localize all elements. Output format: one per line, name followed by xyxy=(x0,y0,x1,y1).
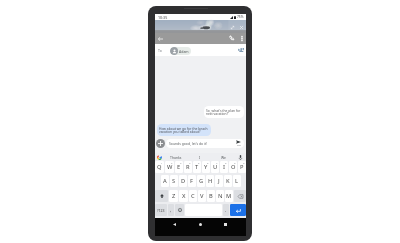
staticText: To xyxy=(158,48,162,53)
staticText: 7 xyxy=(216,161,218,164)
button[interactable]: How about we go for the beach vacation y… xyxy=(157,124,211,136)
button[interactable]: U xyxy=(211,161,219,173)
button[interactable]: P xyxy=(238,161,246,173)
staticText: L xyxy=(235,177,239,185)
button[interactable]: E xyxy=(175,161,183,173)
staticText: U xyxy=(213,163,218,171)
staticText: How about we go for the beach vacation y… xyxy=(159,126,209,134)
staticText: H xyxy=(208,177,213,185)
staticText: D xyxy=(181,177,186,185)
button[interactable]: Y xyxy=(202,161,210,173)
button[interactable]: Call xyxy=(227,34,236,43)
button[interactable]: N xyxy=(216,190,224,202)
staticText: Thanks xyxy=(170,155,182,160)
button[interactable]: F xyxy=(188,175,196,187)
button[interactable]: Sounds good, let's do it! xyxy=(166,139,244,148)
button[interactable]: Voice input xyxy=(237,154,244,160)
staticText: , xyxy=(170,207,172,213)
button[interactable]: L xyxy=(233,175,241,187)
button[interactable]: ?123 xyxy=(155,204,167,216)
button[interactable]: . xyxy=(223,204,229,216)
staticText: 3 xyxy=(180,161,182,164)
button[interactable]: Emoji xyxy=(175,204,184,216)
button[interactable]: H xyxy=(206,175,214,187)
button[interactable]: Q xyxy=(155,161,164,173)
button[interactable]: , xyxy=(168,204,174,216)
button[interactable]: A xyxy=(161,175,169,187)
button[interactable]: O xyxy=(229,161,237,173)
button[interactable]: We xyxy=(215,153,232,161)
staticText: O xyxy=(231,163,236,171)
button[interactable]: K xyxy=(224,175,232,187)
staticText: B xyxy=(209,192,213,200)
staticText: V xyxy=(200,192,204,200)
button[interactable]: Back xyxy=(169,219,179,229)
staticText: X xyxy=(182,192,186,200)
staticText: F xyxy=(190,177,194,185)
staticText: W xyxy=(167,163,173,171)
staticText: 75% xyxy=(237,15,244,19)
staticText: T xyxy=(195,163,199,171)
staticText: Sounds good, let's do it! xyxy=(169,141,208,146)
staticText: P xyxy=(240,163,244,171)
button[interactable]: Expand xyxy=(228,23,237,32)
button[interactable]: Add from contacts xyxy=(234,45,247,54)
staticText: ?123 xyxy=(157,208,165,213)
staticText: K xyxy=(226,177,230,185)
staticText: SMS xyxy=(237,144,241,147)
button[interactable]: Recents xyxy=(220,219,230,229)
button[interactable]: D xyxy=(179,175,187,187)
staticText: 5 xyxy=(198,161,200,164)
button[interactable]: Thanks xyxy=(165,153,186,161)
staticText: R xyxy=(186,163,190,171)
button[interactable]: G xyxy=(197,175,205,187)
staticText: G xyxy=(199,177,204,185)
staticText: N xyxy=(218,192,223,200)
button[interactable]: W xyxy=(165,161,174,173)
staticText: We xyxy=(221,155,226,160)
button[interactable]: Z xyxy=(169,190,178,202)
staticText: . xyxy=(225,207,227,213)
staticText: C xyxy=(191,192,195,200)
button[interactable]: Google search xyxy=(157,155,162,160)
button[interactable]: I xyxy=(193,153,207,161)
button[interactable]: I xyxy=(220,161,228,173)
staticText: S xyxy=(172,177,176,185)
staticText: Adam xyxy=(179,49,189,54)
staticText: 1 xyxy=(161,161,163,164)
button[interactable]: C xyxy=(189,190,197,202)
staticText: 10:35 xyxy=(158,15,168,20)
button[interactable]: Close xyxy=(237,23,246,32)
button[interactable]: T xyxy=(193,161,201,173)
staticText: 2 xyxy=(171,161,173,164)
staticText: 9 xyxy=(234,161,236,164)
button[interactable]: Back xyxy=(156,34,165,43)
button[interactable]: Backspace xyxy=(234,190,246,202)
button[interactable]: S xyxy=(170,175,178,187)
button[interactable]: Add attachment xyxy=(156,139,165,148)
staticText: I xyxy=(199,155,201,160)
staticText: J xyxy=(218,177,220,185)
staticText: 0 xyxy=(243,161,245,164)
button[interactable]: Enter xyxy=(230,204,246,216)
staticText: I xyxy=(223,163,226,171)
button[interactable]: B xyxy=(207,190,215,202)
button[interactable]: R xyxy=(184,161,192,173)
button[interactable]: More options xyxy=(237,34,246,43)
staticText: Q xyxy=(157,163,162,171)
button[interactable]: Adam xyxy=(170,47,191,55)
staticText: Z xyxy=(172,192,176,200)
staticText: So, what's the plan for next vacation? xyxy=(206,108,242,116)
staticText: 6 xyxy=(207,161,209,164)
button[interactable]: X xyxy=(179,190,188,202)
button[interactable]: J xyxy=(215,175,223,187)
button[interactable]: M xyxy=(225,190,233,202)
button[interactable]: Shift xyxy=(155,190,168,202)
button[interactable]: Home xyxy=(195,219,205,229)
button[interactable]: V xyxy=(198,190,206,202)
staticText: 8 xyxy=(225,161,227,164)
button[interactable]: So, what's the plan for next vacation? xyxy=(204,106,244,118)
staticText: A xyxy=(163,177,167,185)
staticText: Y xyxy=(204,163,208,171)
